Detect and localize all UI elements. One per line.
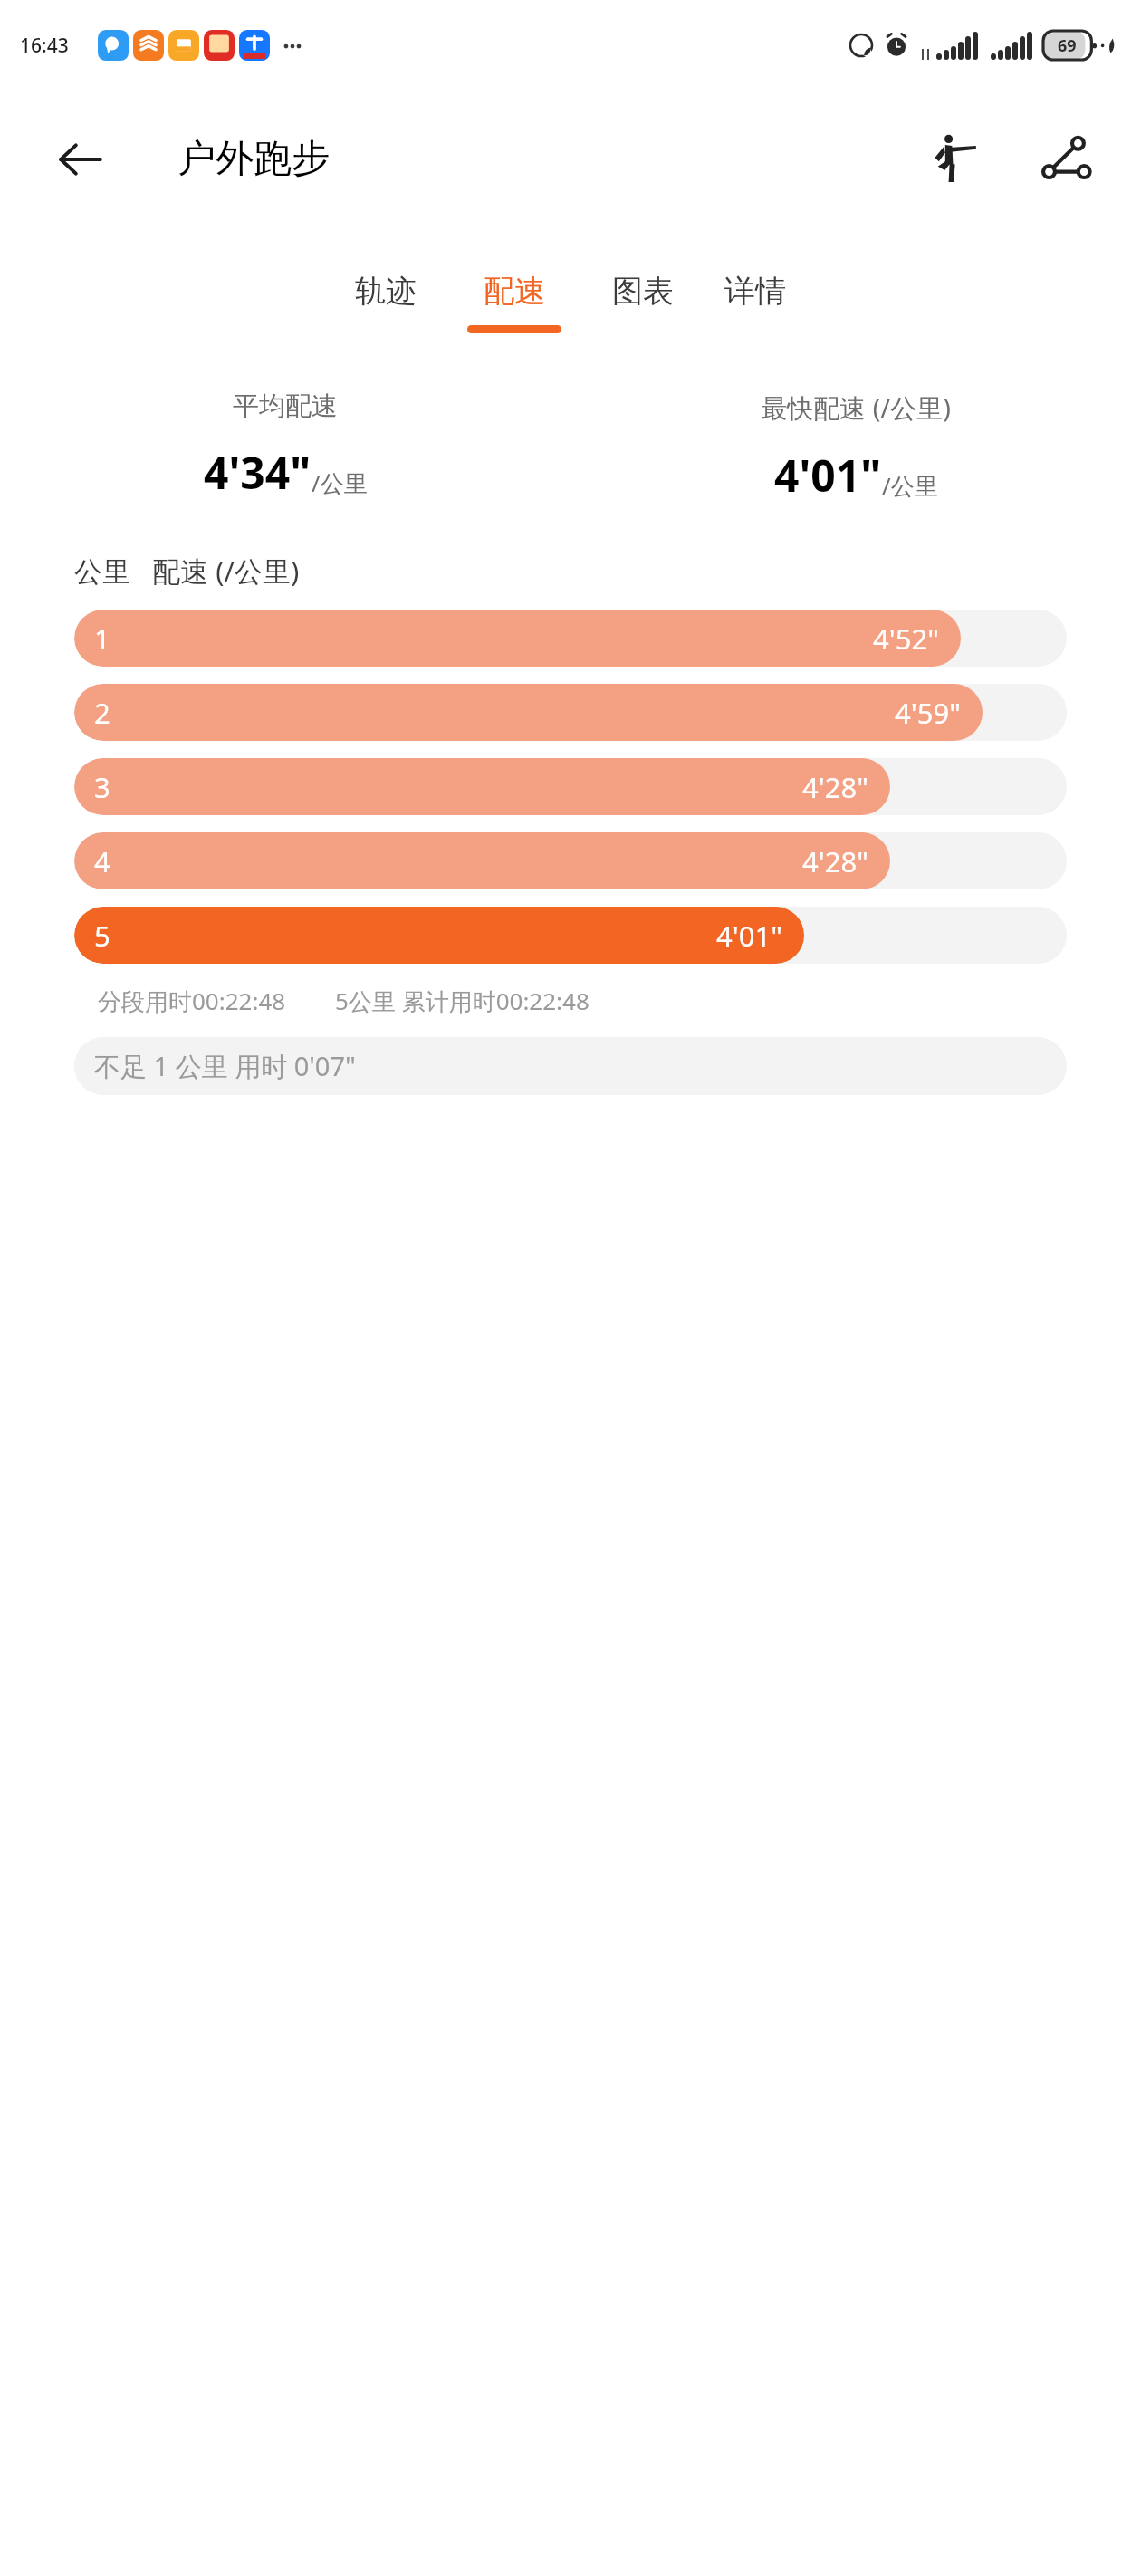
staticText: 5公里 累计用时00:22:48 (335, 985, 590, 1017)
staticText: 3 (94, 768, 110, 806)
button[interactable]: 详情 (699, 266, 811, 339)
staticText: 4'28" (802, 842, 868, 880)
staticText: /公里 (312, 466, 368, 499)
staticText: 图表 (612, 272, 674, 311)
button[interactable]: 2 (74, 684, 1067, 741)
staticText: 轨迹 (355, 272, 417, 311)
button[interactable]: 3 (74, 758, 1067, 815)
button[interactable]: 图表 (587, 266, 699, 339)
button[interactable]: 配速 (442, 266, 587, 339)
button[interactable]: 返回 (51, 129, 110, 188)
button[interactable]: 不足 1 公里 用时 0'07" (74, 1037, 1067, 1095)
staticText: 4'34" (204, 443, 312, 502)
staticText: 4'01" (716, 917, 782, 955)
button[interactable]: 轨迹 (330, 266, 442, 339)
staticText: 配速 (484, 272, 545, 311)
button[interactable]: 分享 (1031, 123, 1101, 194)
staticText: 2 (94, 694, 110, 732)
staticText: 1 (94, 620, 110, 658)
staticText: 平均配速 (233, 389, 338, 423)
button[interactable]: 运动姿态 (918, 123, 989, 194)
staticText: 不足 1 公里 用时 0'07" (94, 1048, 356, 1084)
staticText: 4 (94, 842, 110, 880)
staticText: 最快配速 (/公里) (761, 389, 951, 426)
staticText: 16:43 (20, 33, 69, 59)
staticText: 户外跑步 (177, 135, 330, 183)
staticText: 4'01" (774, 446, 882, 505)
staticText: 69 (1058, 34, 1077, 57)
button[interactable]: 1 (74, 610, 1067, 667)
staticText: 分段用时00:22:48 (98, 985, 286, 1017)
staticText: 5 (94, 917, 110, 955)
staticText: 4'59" (895, 694, 961, 732)
staticText: 公里 配速 (/公里) (74, 552, 300, 590)
staticText: 4'52" (873, 620, 939, 658)
staticText: /公里 (882, 469, 938, 502)
staticText: 详情 (724, 272, 786, 311)
staticText: 4'28" (802, 768, 868, 806)
button[interactable]: 5 (74, 907, 1067, 964)
button[interactable]: 4 (74, 832, 1067, 889)
